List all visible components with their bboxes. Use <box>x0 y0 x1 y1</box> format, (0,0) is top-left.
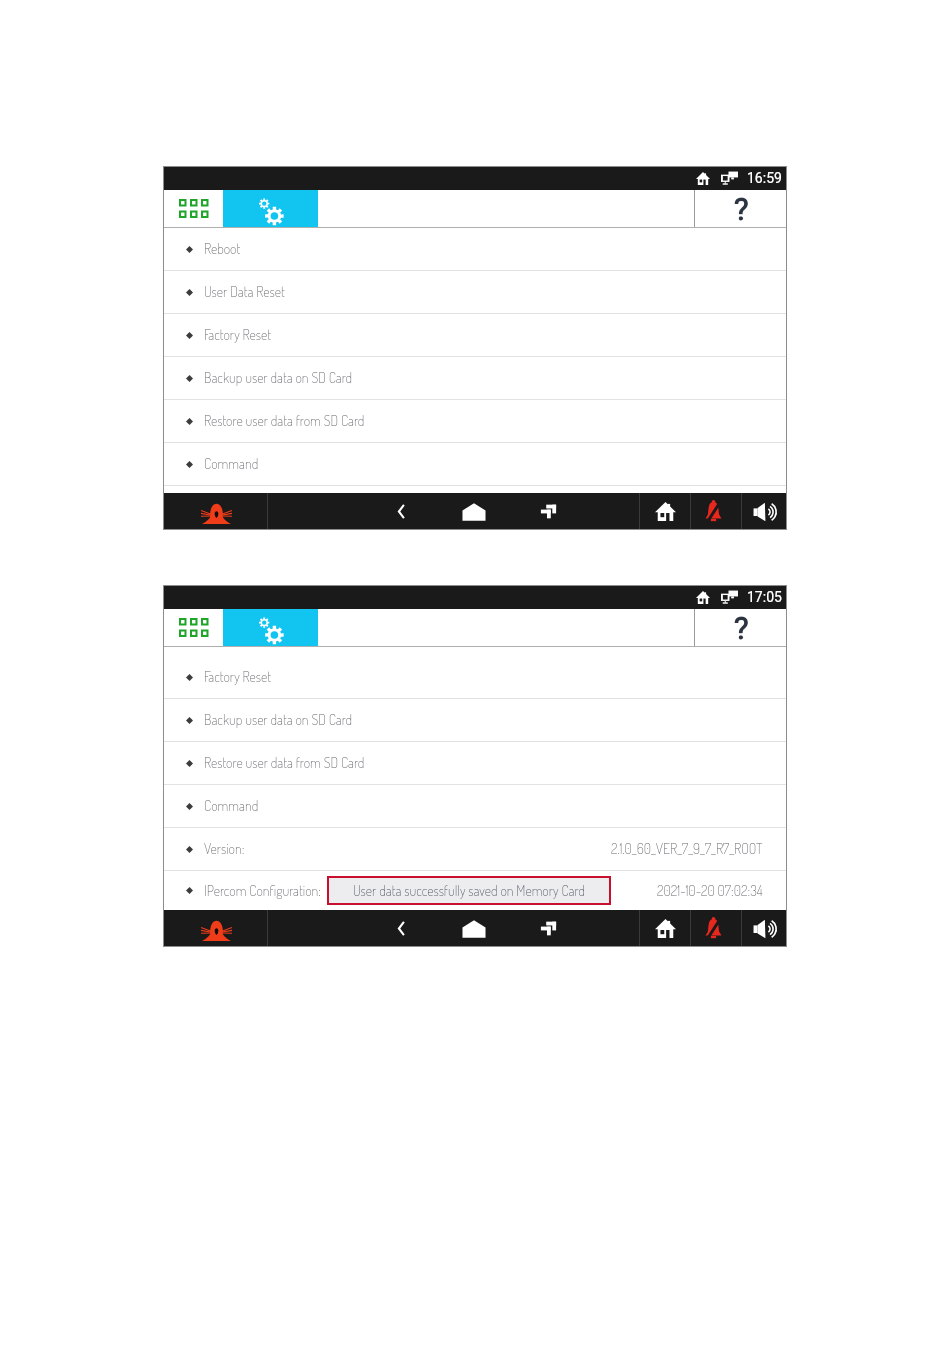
button[interactable]: Backup user data on SD Card <box>163 357 787 399</box>
button[interactable]: Command <box>163 443 787 485</box>
other: Cast display <box>721 590 738 604</box>
staticText: Factory Reset <box>204 668 271 686</box>
button[interactable]: Notifications muted <box>689 910 737 947</box>
button[interactable]: Factory Reset <box>163 314 787 356</box>
button[interactable]: Octopus menu <box>192 910 240 947</box>
button[interactable]: Notifications muted <box>689 493 737 530</box>
staticText: Factory Reset <box>204 326 271 344</box>
staticText: ? <box>734 610 749 646</box>
staticText: User data successfully saved on Memory C… <box>353 882 585 900</box>
staticText: 16:59 <box>747 170 782 186</box>
button[interactable]: Recent apps <box>524 493 572 530</box>
button[interactable]: IPercom Configuration: <box>163 871 787 910</box>
other: Cast display <box>721 171 738 185</box>
button[interactable]: Recent apps <box>524 910 572 947</box>
button[interactable]: Help <box>695 609 787 646</box>
staticText: Backup user data on SD Card <box>204 711 353 729</box>
staticText: Reboot <box>204 240 241 258</box>
button[interactable]: Volume <box>742 910 790 947</box>
staticText: Command <box>204 455 259 473</box>
staticText: Version: <box>204 840 245 858</box>
button[interactable]: Octopus menu <box>192 493 240 530</box>
button[interactable]: Version: <box>163 828 787 870</box>
button[interactable]: Back <box>377 493 425 530</box>
button[interactable]: Settings <box>223 609 318 646</box>
button[interactable]: Backup user data on SD Card <box>163 699 787 741</box>
button[interactable]: Home screen <box>641 910 689 947</box>
staticText: Restore user data from SD Card <box>204 754 365 772</box>
button[interactable]: Home screen <box>641 493 689 530</box>
other: Home indicator <box>696 172 710 185</box>
button[interactable]: User Data Reset <box>163 271 787 313</box>
staticText: User Data Reset <box>204 283 285 301</box>
staticText: 17:05 <box>747 589 782 605</box>
button[interactable]: Applications <box>163 609 223 646</box>
staticText: Restore user data from SD Card <box>204 412 365 430</box>
button[interactable]: Volume <box>742 493 790 530</box>
button[interactable]: Help <box>695 190 787 227</box>
button[interactable]: Restore user data from SD Card <box>163 400 787 442</box>
button[interactable]: Factory Reset <box>163 656 787 698</box>
button[interactable]: Settings <box>223 190 318 227</box>
button[interactable]: Restore user data from SD Card <box>163 742 787 784</box>
staticText: Backup user data on SD Card <box>204 369 353 387</box>
staticText: 2021-10-20 07:02:34 <box>657 882 763 900</box>
staticText: 2.1.0_60_VER_7_9_7_R7_ROOT <box>611 840 763 858</box>
button[interactable]: Reboot <box>163 228 787 270</box>
button[interactable]: Back <box>377 910 425 947</box>
button[interactable]: Applications <box>163 190 223 227</box>
staticText: IPercom Configuration: <box>204 882 322 900</box>
button[interactable]: Command <box>163 785 787 827</box>
other: Home indicator <box>696 591 710 604</box>
button[interactable]: Home <box>450 493 498 530</box>
staticText: ? <box>734 191 749 227</box>
button[interactable]: Home <box>450 910 498 947</box>
staticText: Command <box>204 797 259 815</box>
